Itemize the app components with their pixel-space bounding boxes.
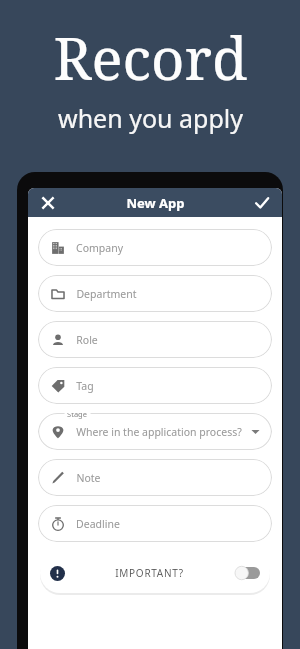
button[interactable]: Company (38, 229, 272, 266)
staticText: Where in the application process? (76, 425, 242, 439)
staticText: IMPORTANT? (115, 566, 184, 580)
staticText: Tag (76, 379, 94, 393)
button[interactable]: Deadline (38, 505, 272, 542)
staticText: Stage (67, 413, 87, 419)
staticText: Company (76, 241, 123, 255)
button[interactable]: Save (248, 189, 276, 217)
button[interactable]: Department (38, 275, 272, 312)
staticText: Record (53, 18, 248, 97)
staticText: Department (76, 287, 137, 301)
button[interactable]: Note (38, 459, 272, 496)
button[interactable]: Close (34, 189, 62, 217)
staticText: when you apply (58, 101, 243, 135)
staticText: New App (126, 194, 185, 212)
staticText: Role (76, 333, 98, 347)
button[interactable]: Tag (38, 367, 272, 404)
button[interactable]: Role (38, 321, 272, 358)
button[interactable]: Stage (38, 413, 272, 450)
button[interactable]: IMPORTANT? (40, 553, 270, 593)
staticText: Deadline (76, 517, 120, 531)
button[interactable]: Important toggle (235, 567, 260, 579)
staticText: Note (76, 471, 101, 485)
